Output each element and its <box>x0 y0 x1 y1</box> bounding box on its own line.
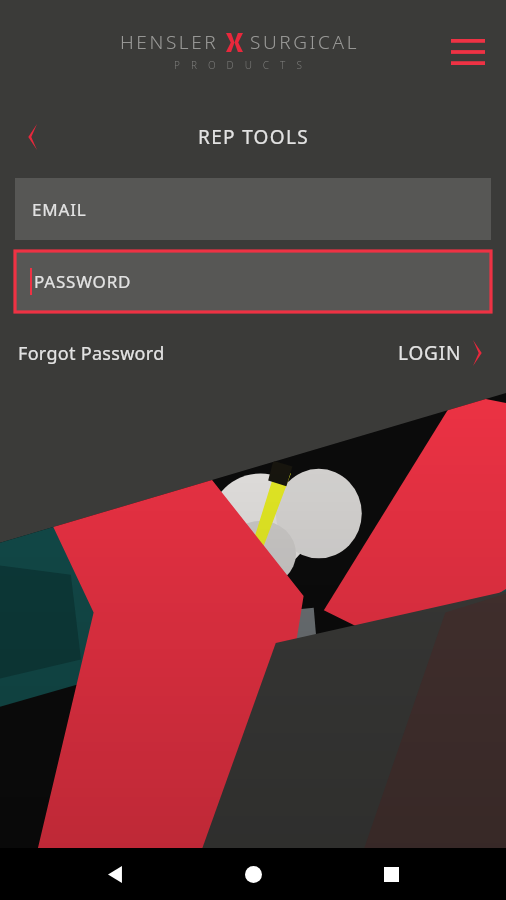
button[interactable]: Home <box>230 851 276 897</box>
staticText: Forgot Password <box>18 341 165 366</box>
button[interactable]: EMAIL <box>15 178 491 240</box>
staticText: P R O D U C T S <box>174 58 307 72</box>
staticText: LOGIN <box>398 340 462 366</box>
staticText: SURGICAL <box>250 29 360 55</box>
button[interactable]: Open menu <box>446 30 490 74</box>
staticText: HENSLER <box>120 29 219 55</box>
staticText: REP TOOLS <box>198 124 309 150</box>
button[interactable]: Recent apps <box>368 851 414 897</box>
staticText: EMAIL <box>32 198 87 221</box>
button[interactable]: Forgot Password <box>8 333 175 374</box>
button[interactable]: Back <box>6 114 52 160</box>
button[interactable]: Back <box>92 851 138 897</box>
staticText: PASSWORD <box>34 270 132 293</box>
button[interactable]: LOGIN <box>388 332 498 374</box>
button[interactable]: PASSWORD <box>15 251 491 312</box>
